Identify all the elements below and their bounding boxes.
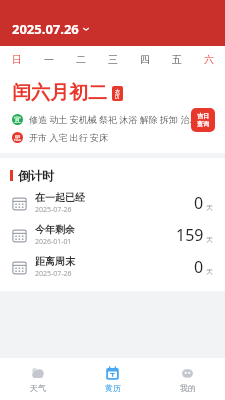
staticText: 天 — [206, 267, 213, 276]
staticText: 农 历 — [115, 88, 120, 100]
staticText: 开市 入宅 出行 安床 — [29, 131, 109, 143]
button[interactable]: 二 — [65, 46, 97, 73]
button[interactable]: 三 — [97, 46, 129, 73]
staticText: 159 — [176, 224, 204, 246]
staticText: 日 — [12, 53, 22, 66]
button[interactable]: 六 — [193, 46, 225, 73]
button[interactable]: 四 — [129, 46, 161, 73]
button[interactable]: 一 — [33, 46, 65, 73]
staticText: 2026-01-01 — [35, 237, 72, 247]
button[interactable]: 黄历 — [75, 358, 150, 400]
other: 天气 — [30, 366, 45, 381]
staticText: 0 — [194, 192, 204, 214]
button[interactable]: 今年剩余 — [0, 219, 225, 251]
staticText: 修造 动土 安机械 祭祀 沐浴 解除 拆卸 治... — [29, 113, 197, 125]
button[interactable]: 在一起已经 — [0, 187, 225, 219]
staticText: 黄历 — [105, 383, 121, 393]
staticText: 宜 — [14, 115, 21, 124]
staticText: 2025.07.26 — [12, 20, 79, 38]
staticText: 距离周末 — [35, 255, 75, 268]
button[interactable]: 距离周末 — [0, 251, 225, 283]
staticText: 天 — [206, 235, 213, 244]
button[interactable]: 天气 — [0, 358, 75, 400]
staticText: 查询 — [197, 120, 209, 128]
other: 我的 — [180, 366, 195, 381]
button[interactable]: 我的 — [150, 358, 225, 400]
button[interactable]: 日 — [0, 46, 33, 73]
staticText: 忌 — [14, 133, 21, 142]
staticText: 今年剩余 — [35, 223, 75, 236]
staticText: 五 — [172, 53, 182, 66]
staticText: 倒计时 — [18, 168, 54, 183]
staticText: 天 — [206, 203, 213, 212]
other: 黄历 — [105, 366, 120, 381]
staticText: 2025-07-26 — [35, 269, 72, 279]
staticText: 二 — [76, 53, 86, 66]
button[interactable]: 农 历 — [112, 86, 123, 101]
staticText: 四 — [140, 53, 150, 66]
button[interactable]: 吉日查询 — [191, 108, 215, 132]
staticText: 我的 — [180, 383, 196, 393]
staticText: 吉日 — [197, 112, 209, 120]
staticText: 闰六月初二 — [12, 81, 107, 105]
staticText: 在一起已经 — [35, 191, 85, 204]
staticText: 六 — [204, 53, 214, 66]
staticText: 2025-07-26 — [35, 205, 72, 215]
staticText: 一 — [44, 53, 54, 66]
button[interactable]: 2025.07.26 — [12, 20, 90, 38]
button[interactable]: 五 — [161, 46, 193, 73]
staticText: 0 — [194, 256, 204, 278]
staticText: 天气 — [30, 383, 46, 393]
staticText: 三 — [108, 53, 118, 66]
